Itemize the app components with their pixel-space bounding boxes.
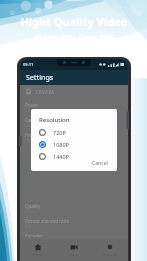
button[interactable]: Prefix [25,130,123,145]
button[interactable]: Power [25,100,123,115]
button[interactable]: Encoder [25,231,123,239]
staticText: Picture size and ratio [25,218,70,224]
staticText: HD, 1080p, 1440p, 12mbps, 60FPS [33,34,114,41]
staticText: Encoder [25,233,43,237]
button[interactable]: Cancel [89,159,111,168]
staticText: CAM [25,138,34,143]
button[interactable]: Picture size and ratio [25,216,123,231]
button[interactable]: 1440P [39,153,111,160]
button[interactable]: 1080P [39,141,111,148]
staticText: CAMERA [36,89,55,95]
staticText: Quality [25,203,41,209]
staticText: Settings [103,252,117,257]
button[interactable]: Settings [92,239,128,261]
staticText: Video [69,252,79,257]
button[interactable]: 720P [39,129,111,136]
button[interactable]: Camera [25,115,123,130]
staticText: Prefix [25,132,38,138]
staticText: 1080P [53,141,69,148]
staticText: Hight Quality Video [20,14,128,29]
staticText: Home [33,252,43,257]
staticText: 720P [53,129,66,136]
button[interactable]: Settings [20,70,128,85]
staticText: 09:11 [23,62,34,67]
button[interactable]: Video [56,239,92,261]
staticText: Resolution [39,116,70,124]
button[interactable]: Home [20,239,56,261]
staticText: Camera [25,108,40,113]
staticText: Camera [25,117,42,123]
staticText: Cancel [92,160,108,167]
staticText: Power [25,102,39,108]
staticText: Automatic preview [25,123,61,128]
staticText: 1440P [53,153,69,160]
button[interactable]: Quality [25,201,123,216]
staticText: Settings [26,73,54,83]
